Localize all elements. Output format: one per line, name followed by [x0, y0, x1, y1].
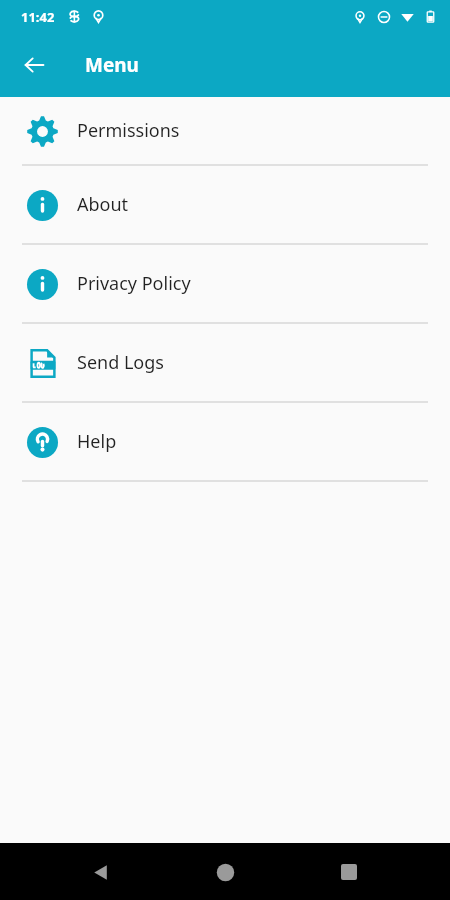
button[interactable]: Recents — [326, 849, 372, 895]
button[interactable]: Back — [78, 849, 124, 895]
button[interactable]: Permissions — [0, 97, 450, 166]
button[interactable]: Privacy Policy — [0, 245, 450, 324]
button[interactable]: About — [0, 166, 450, 245]
button[interactable]: Send Logs — [0, 324, 450, 403]
button[interactable]: Help — [0, 403, 450, 482]
staticText: Menu — [85, 52, 139, 78]
staticText: Help — [77, 429, 117, 454]
staticText: 11:42 — [21, 8, 55, 26]
button[interactable]: Back — [14, 45, 54, 85]
staticText: Send Logs — [77, 350, 164, 375]
button[interactable]: Home — [202, 849, 248, 895]
staticText: Privacy Policy — [77, 271, 191, 296]
staticText: Permissions — [77, 118, 180, 143]
staticText: About — [77, 192, 129, 217]
